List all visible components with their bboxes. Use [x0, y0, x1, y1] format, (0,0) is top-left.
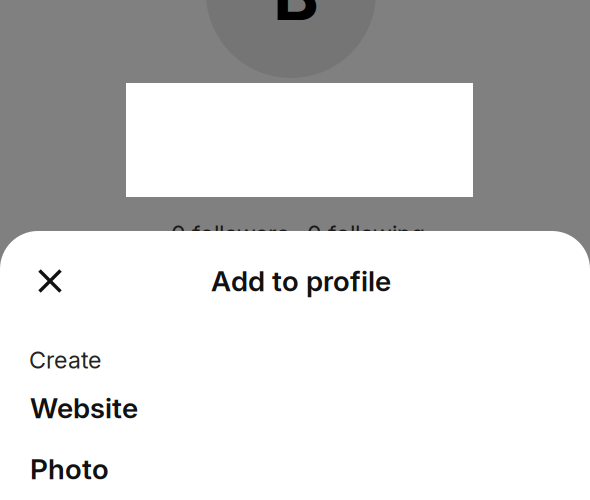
button[interactable]: Close [28, 259, 72, 303]
staticText: 0 followers · 0 following [171, 220, 425, 248]
staticText: Website [30, 391, 138, 425]
button[interactable]: Photo [0, 447, 590, 491]
staticText: B [273, 0, 319, 37]
staticText: Photo [30, 452, 109, 486]
button[interactable]: Website [0, 386, 590, 430]
staticText: Add to profile [211, 264, 391, 298]
staticText: Create [29, 346, 101, 374]
